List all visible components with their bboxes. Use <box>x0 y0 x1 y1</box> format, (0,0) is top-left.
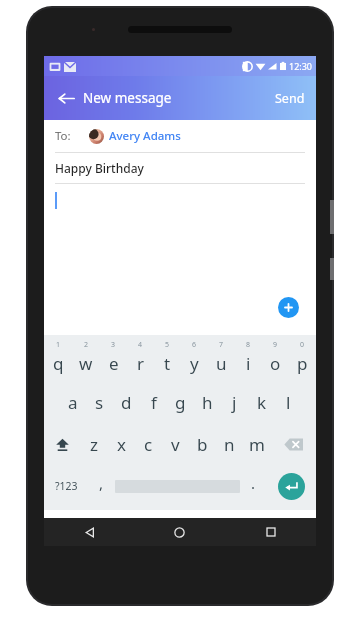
button[interactable]: 2 <box>72 338 100 381</box>
button[interactable]: Send <box>264 80 316 117</box>
staticText: e <box>109 352 119 375</box>
staticText: g <box>175 391 186 414</box>
button[interactable]: Shift <box>44 423 80 465</box>
staticText: n <box>224 433 235 456</box>
button[interactable]: 6 <box>181 338 208 381</box>
staticText: h <box>202 391 213 414</box>
staticText: 3 <box>111 340 116 350</box>
button[interactable]: h <box>194 381 221 423</box>
button[interactable]: Backspace <box>270 423 316 465</box>
button[interactable]: n <box>216 423 243 465</box>
staticText: 4 <box>138 340 143 350</box>
button[interactable]: 8 <box>235 338 262 381</box>
staticText: 6 <box>192 340 197 350</box>
staticText: q <box>53 352 64 375</box>
staticText: d <box>121 391 132 414</box>
staticText: v <box>171 433 180 456</box>
button[interactable]: 1 <box>44 338 72 381</box>
button[interactable]: d <box>113 381 140 423</box>
staticText: 5 <box>165 340 170 350</box>
button[interactable]: Back <box>50 82 82 114</box>
staticText: 1 <box>56 340 61 350</box>
button[interactable]: Back <box>44 518 134 546</box>
button[interactable]: 3 <box>100 338 127 381</box>
staticText: Send <box>275 90 305 107</box>
button[interactable]: 9 <box>262 338 289 381</box>
button[interactable]: ?123 <box>44 465 88 507</box>
button[interactable]: b <box>189 423 216 465</box>
staticText: w <box>79 352 93 375</box>
button[interactable]: a <box>59 381 86 423</box>
button[interactable]: Enter <box>278 473 305 500</box>
staticText: z <box>90 433 98 456</box>
button[interactable]: x <box>108 423 135 465</box>
button[interactable]: . <box>240 465 267 507</box>
staticText: c <box>144 433 153 456</box>
button[interactable]: g <box>167 381 194 423</box>
staticText: Happy Birthday <box>55 160 144 176</box>
staticText: j <box>232 391 237 414</box>
staticText: k <box>257 391 267 414</box>
staticText: 7 <box>219 340 224 350</box>
staticText: New message <box>83 89 172 107</box>
button[interactable]: c <box>135 423 162 465</box>
button[interactable]: Add attachment <box>44 184 316 335</box>
button[interactable]: l <box>275 381 302 423</box>
staticText: p <box>297 352 308 375</box>
button[interactable]: Avery Adams <box>109 128 181 144</box>
button[interactable]: f <box>140 381 167 423</box>
button[interactable]: k <box>248 381 275 423</box>
button[interactable]: Space <box>115 465 240 507</box>
staticText: x <box>117 433 126 456</box>
button[interactable]: 4 <box>127 338 154 381</box>
staticText: l <box>286 391 291 414</box>
staticText: s <box>95 391 104 414</box>
staticText: To: <box>55 128 71 144</box>
staticText: 2 <box>84 340 89 350</box>
staticText: , <box>99 473 104 493</box>
staticText: t <box>164 352 171 375</box>
staticText: 12:30 <box>289 60 313 72</box>
button[interactable]: j <box>221 381 248 423</box>
staticText: r <box>137 352 145 375</box>
staticText: y <box>190 352 199 375</box>
button[interactable]: 5 <box>154 338 181 381</box>
button[interactable]: , <box>88 465 115 507</box>
button[interactable]: m <box>243 423 270 465</box>
staticText: . <box>251 473 256 493</box>
staticText: f <box>151 391 157 414</box>
staticText: o <box>270 352 281 375</box>
staticText: b <box>197 433 208 456</box>
staticText: i <box>246 352 251 375</box>
staticText: 0 <box>300 340 305 350</box>
button[interactable]: Home <box>134 518 225 546</box>
button[interactable]: Add attachment <box>278 297 299 318</box>
button[interactable]: 0 <box>289 338 316 381</box>
button[interactable]: v <box>162 423 189 465</box>
staticText: 9 <box>273 340 278 350</box>
staticText: u <box>216 352 227 375</box>
staticText: m <box>249 433 265 456</box>
staticText: 8 <box>246 340 251 350</box>
button[interactable]: Happy Birthday <box>44 153 316 183</box>
button[interactable]: z <box>80 423 108 465</box>
button[interactable]: 7 <box>208 338 235 381</box>
staticText: a <box>68 391 78 414</box>
staticText: ?123 <box>55 479 78 493</box>
button[interactable]: s <box>86 381 113 423</box>
button[interactable]: Recent apps <box>225 518 316 546</box>
